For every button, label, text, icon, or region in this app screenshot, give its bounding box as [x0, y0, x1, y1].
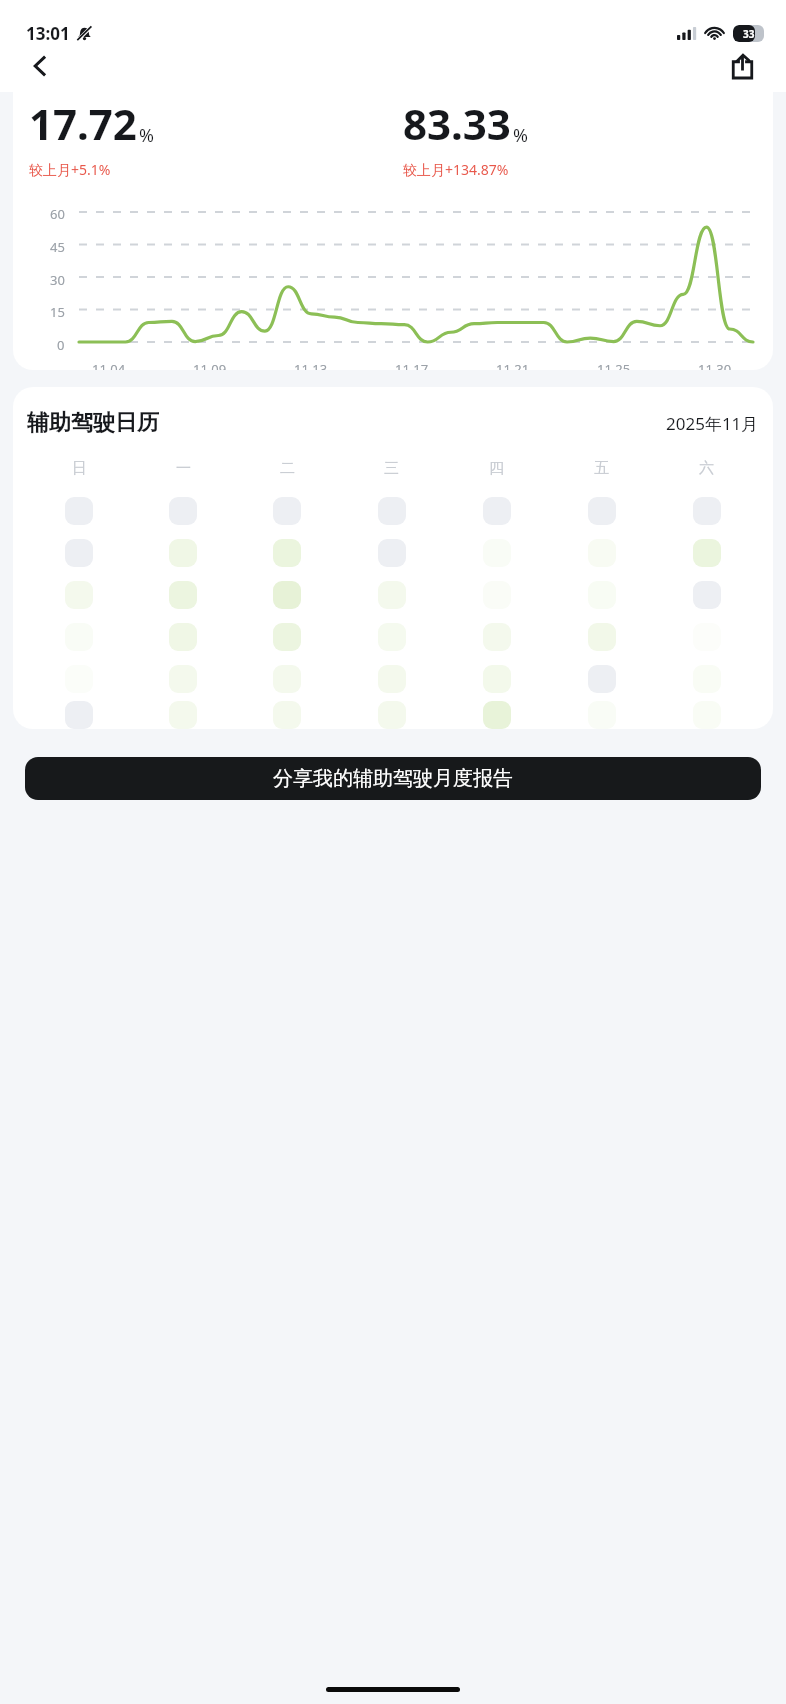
button[interactable]	[65, 701, 93, 729]
button[interactable]	[273, 539, 301, 567]
staticText: 11.17	[395, 360, 429, 370]
button[interactable]	[378, 701, 406, 729]
button[interactable]: 分享我的辅助驾驶月度报告	[25, 757, 761, 800]
button[interactable]	[169, 701, 197, 729]
button[interactable]	[273, 701, 301, 729]
button[interactable]	[65, 497, 93, 525]
button[interactable]	[273, 497, 301, 525]
staticText: 15	[50, 303, 65, 321]
staticText: 0	[57, 336, 65, 354]
button[interactable]	[65, 539, 93, 567]
staticText: 较上月+5.1%	[29, 160, 111, 179]
button[interactable]	[483, 701, 511, 729]
button[interactable]	[378, 623, 406, 651]
staticText: 辅助驾驶日历	[27, 409, 159, 437]
button[interactable]	[273, 665, 301, 693]
button[interactable]: Share	[718, 42, 766, 90]
button[interactable]	[588, 539, 616, 567]
button[interactable]	[693, 497, 721, 525]
staticText: 日	[72, 459, 87, 478]
staticText: 11.13	[294, 360, 328, 370]
button[interactable]	[273, 623, 301, 651]
button[interactable]	[483, 665, 511, 693]
staticText: 17.72	[29, 95, 137, 152]
button[interactable]	[169, 581, 197, 609]
staticText: 30	[50, 271, 65, 289]
staticText: 11.09	[193, 360, 227, 370]
button[interactable]	[588, 665, 616, 693]
button[interactable]	[483, 623, 511, 651]
staticText: 六	[699, 459, 714, 478]
button[interactable]	[483, 497, 511, 525]
button[interactable]	[588, 623, 616, 651]
staticText: 33	[743, 27, 755, 41]
staticText: 60	[50, 205, 65, 223]
button[interactable]	[588, 581, 616, 609]
button[interactable]	[169, 665, 197, 693]
button[interactable]	[169, 539, 197, 567]
staticText: 83.33	[403, 95, 511, 152]
staticText: 13:01	[26, 22, 70, 45]
button[interactable]	[65, 581, 93, 609]
staticText: 分享我的辅助驾驶月度报告	[273, 766, 513, 791]
staticText: 一	[176, 459, 191, 478]
staticText: 三	[384, 459, 399, 478]
staticText: 较上月+134.87%	[403, 160, 509, 179]
button[interactable]	[169, 497, 197, 525]
button[interactable]	[378, 581, 406, 609]
staticText: 11.04	[92, 360, 126, 370]
button[interactable]: Back	[16, 42, 64, 90]
button[interactable]	[273, 581, 301, 609]
staticText: %	[139, 123, 154, 148]
button[interactable]	[693, 539, 721, 567]
button[interactable]	[169, 623, 197, 651]
staticText: 五	[594, 459, 609, 478]
button[interactable]	[693, 581, 721, 609]
staticText: 四	[489, 459, 504, 478]
staticText: 2025年11月	[666, 412, 759, 435]
staticText: 二	[280, 459, 295, 478]
staticText: 45	[50, 238, 65, 256]
staticText: %	[513, 123, 528, 148]
staticText: 11.21	[496, 360, 530, 370]
button[interactable]	[588, 497, 616, 525]
button[interactable]	[378, 539, 406, 567]
staticText: 11.30	[698, 360, 732, 370]
button[interactable]	[378, 497, 406, 525]
staticText: 11.25	[597, 360, 631, 370]
button[interactable]	[378, 665, 406, 693]
